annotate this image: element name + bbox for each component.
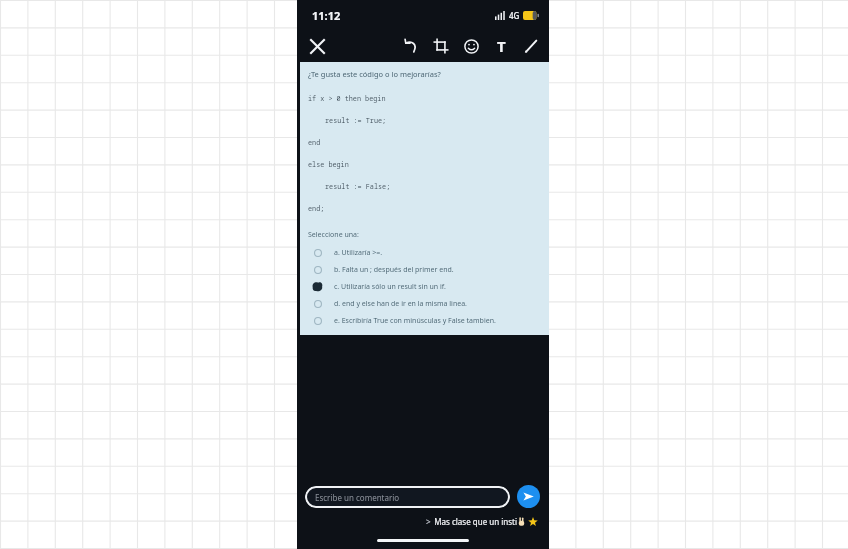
staticText: result := True; (325, 116, 387, 125)
staticText: ¿Te gusta este código o lo mejorarías? (308, 69, 441, 79)
button[interactable]: Escribe un comentario (305, 486, 510, 508)
button[interactable]: e. Escribiría True con minúsculas y Fals… (300, 312, 549, 329)
staticText: if x > 0 then begin (308, 94, 386, 103)
button[interactable]: Crop (430, 35, 452, 57)
button[interactable]: Add text (490, 35, 512, 57)
staticText: end; (308, 204, 325, 213)
staticText: a. Utilizaría >=. (334, 248, 383, 258)
button[interactable]: Send (517, 485, 540, 508)
staticText: Escribe un comentario (315, 492, 400, 503)
staticText: > (426, 516, 431, 527)
staticText: Mas clase que un insti (434, 516, 517, 527)
staticText: Seleccione una: (308, 230, 359, 240)
staticText: T (497, 36, 506, 56)
staticText: else begin (308, 160, 349, 169)
button[interactable]: d. end y else han de ir en la misma line… (300, 295, 549, 312)
button[interactable]: c. Utilizaría sólo un result sin un if. (300, 278, 549, 295)
staticText: c. Utilizaría sólo un result sin un if. (334, 282, 446, 292)
staticText: e. Escribiría True con minúsculas y Fals… (334, 316, 496, 326)
button[interactable]: Draw (520, 35, 542, 57)
button[interactable]: Undo (400, 35, 422, 57)
staticText: result := False; (325, 182, 391, 191)
staticText: 4G (509, 10, 520, 21)
staticText: end (308, 138, 321, 147)
button[interactable]: a. Utilizaría >=. (300, 244, 549, 261)
button[interactable]: b. Falta un ; después del primer end. (300, 261, 549, 278)
button[interactable]: Close (303, 32, 331, 60)
staticText: d. end y else han de ir en la misma line… (334, 299, 467, 309)
staticText: 11:12 (312, 8, 341, 23)
staticText: b. Falta un ; después del primer end. (334, 265, 454, 275)
button[interactable]: Sticker (460, 35, 482, 57)
